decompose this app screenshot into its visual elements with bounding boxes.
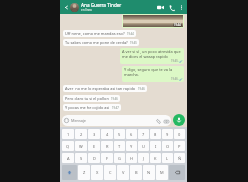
staticText: 1	[67, 132, 70, 137]
button[interactable]: S	[75, 153, 87, 163]
button[interactable]: Aver no me lo esperaba asi tan rapido	[63, 85, 147, 92]
button[interactable]: Uff nene, como me mandas eso?	[63, 30, 136, 37]
button[interactable]: 7	[138, 129, 149, 139]
staticText: 19:44	[127, 32, 134, 36]
button[interactable]: T	[114, 141, 125, 151]
button[interactable]: J	[138, 153, 149, 163]
button[interactable]: 4	[101, 129, 113, 139]
staticText: H	[130, 156, 133, 161]
staticText: 2	[80, 132, 83, 137]
button[interactable]: Y pocas me he cojido asi	[63, 104, 121, 111]
staticText: W	[79, 144, 83, 149]
staticText: Y	[130, 144, 133, 149]
button[interactable]: A ver si sí , un poco atrevida que me di…	[120, 48, 184, 64]
button[interactable]: Z	[78, 165, 90, 180]
staticText: J	[143, 156, 145, 161]
staticText: 19:46	[171, 77, 178, 81]
staticText: U	[142, 144, 145, 149]
button[interactable]: 6	[126, 129, 137, 139]
button[interactable]: Y digo, seguro que te va la marcha.	[122, 66, 184, 82]
button[interactable]: W	[75, 141, 87, 151]
staticText: 0	[178, 132, 181, 137]
button[interactable]: 1	[62, 129, 74, 139]
button[interactable]: U	[138, 141, 149, 151]
button[interactable]: More options	[177, 3, 185, 11]
button[interactable]: 5	[114, 129, 125, 139]
button[interactable]: 2	[75, 129, 87, 139]
button[interactable]: Contact photo	[70, 3, 79, 12]
button[interactable]: Back	[62, 3, 70, 11]
button[interactable]: H	[126, 153, 137, 163]
button[interactable]: Pero claro tu si el pollon	[63, 95, 120, 102]
staticText: K	[154, 156, 157, 161]
staticText: 5	[118, 132, 121, 137]
staticText: N	[147, 170, 151, 175]
button[interactable]: Ñ	[174, 153, 185, 163]
button[interactable]: P	[174, 141, 185, 151]
staticText: C	[109, 170, 112, 175]
button[interactable]: V	[117, 165, 129, 180]
staticText: P	[178, 144, 181, 149]
staticText: 19:46	[111, 97, 118, 101]
button[interactable]: 3	[88, 129, 100, 139]
button[interactable]: R	[101, 141, 113, 151]
staticText: 19:46	[138, 87, 145, 91]
staticText: X	[96, 170, 99, 175]
button[interactable]: Video call	[155, 2, 166, 13]
staticText: A	[67, 156, 70, 161]
staticText: 6	[130, 132, 133, 137]
button[interactable]: Photo message	[123, 15, 183, 27]
staticText: Tu sabes como me pone de cerda?	[65, 40, 128, 45]
button[interactable]: I	[150, 141, 161, 151]
staticText: F	[106, 156, 109, 161]
button[interactable]: Y	[126, 141, 137, 151]
staticText: L	[166, 156, 169, 161]
staticText: M	[160, 170, 164, 175]
staticText: A ver si sí , un poco atrevida que me di…	[122, 49, 182, 59]
button[interactable]: 0	[174, 129, 185, 139]
button[interactable]: Attach file	[155, 118, 161, 124]
button[interactable]: K	[150, 153, 161, 163]
button[interactable]: Shift	[62, 165, 77, 180]
staticText: Aver no me lo esperaba asi tan rapido	[65, 86, 136, 91]
staticText: E	[93, 144, 96, 149]
button[interactable]: O	[162, 141, 173, 151]
button[interactable]: G	[114, 153, 125, 163]
button[interactable]: Camera	[163, 118, 169, 124]
button[interactable]: L	[162, 153, 173, 163]
button[interactable]: D	[88, 153, 100, 163]
staticText: B	[135, 170, 138, 175]
button[interactable]: Record voice message	[173, 114, 185, 126]
staticText: Pero claro tu si el pollon	[65, 96, 109, 101]
staticText: 8	[154, 132, 157, 137]
button[interactable]: M	[156, 165, 168, 180]
button[interactable]: Voice call	[166, 2, 177, 13]
button[interactable]: Mensaje	[62, 115, 171, 126]
button[interactable]: 9	[162, 129, 173, 139]
staticText: 19:44	[174, 23, 181, 27]
button[interactable]: X	[91, 165, 103, 180]
staticText: O	[166, 144, 170, 149]
button[interactable]: Tu sabes como me pone de cerda?	[63, 39, 139, 46]
staticText: Uff nene, como me mandas eso?	[65, 31, 125, 36]
staticText: 7	[142, 132, 145, 137]
staticText: Q	[66, 144, 70, 149]
staticText: Y digo, seguro que te va la marcha.	[124, 67, 182, 77]
button[interactable]: B	[130, 165, 142, 180]
button[interactable]: N	[143, 165, 155, 180]
button[interactable]: Backspace	[169, 165, 185, 180]
button[interactable]: A	[62, 153, 74, 163]
staticText: I	[155, 144, 157, 149]
staticText: 9	[166, 132, 169, 137]
staticText: 3	[93, 132, 96, 137]
button[interactable]: Ana Guerra Tinder	[81, 2, 155, 12]
staticText: 19:45	[171, 59, 178, 63]
button[interactable]: C	[104, 165, 116, 180]
button[interactable]: F	[101, 153, 113, 163]
button[interactable]: E	[88, 141, 100, 151]
button[interactable]: 8	[150, 129, 161, 139]
staticText: Ñ	[178, 156, 182, 161]
button[interactable]: Q	[62, 141, 74, 151]
staticText: Y pocas me he cojido asi	[65, 105, 110, 110]
staticText: Z	[83, 170, 86, 175]
